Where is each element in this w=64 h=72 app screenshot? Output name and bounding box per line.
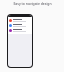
button[interactable] (9, 23, 31, 28)
staticText: Easy to navigate design (13, 1, 52, 6)
button[interactable] (9, 28, 31, 33)
button[interactable] (9, 18, 31, 23)
